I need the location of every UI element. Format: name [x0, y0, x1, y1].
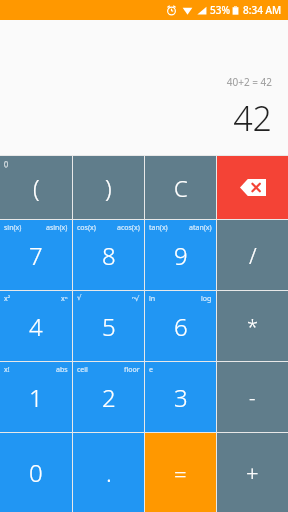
staticText: √	[77, 294, 82, 302]
staticText: x²	[4, 294, 11, 304]
button[interactable]: ln	[145, 291, 216, 361]
staticText: *	[247, 313, 259, 340]
staticText: xⁿ	[61, 294, 68, 304]
button[interactable]: *	[217, 291, 288, 361]
staticText: abs	[56, 365, 68, 375]
staticText: x!	[4, 365, 10, 375]
button[interactable]: -	[217, 362, 288, 432]
staticText: 6	[174, 310, 188, 343]
button[interactable]: )	[73, 156, 144, 219]
staticText: cos(x)	[77, 223, 96, 233]
button[interactable]: ceil	[73, 362, 144, 432]
staticText: 4	[29, 310, 43, 343]
staticText: atan(x)	[189, 223, 212, 233]
button[interactable]: √	[73, 291, 144, 361]
button[interactable]: +	[217, 433, 288, 512]
staticText: ()	[4, 159, 9, 169]
staticText: acos(x)	[117, 223, 140, 233]
staticText: /	[249, 240, 257, 270]
staticText: (	[33, 171, 40, 204]
staticText: e	[149, 365, 153, 375]
staticText: log	[201, 294, 212, 304]
button[interactable]: =	[145, 433, 216, 512]
staticText: 42	[233, 95, 272, 141]
staticText: 2	[102, 381, 116, 414]
staticText: ⁿ√	[132, 294, 140, 304]
staticText: .	[106, 456, 112, 489]
button[interactable]: .	[73, 433, 144, 512]
staticText: )	[105, 171, 112, 204]
staticText: 40+2 = 42	[226, 75, 272, 89]
button[interactable]: x²	[0, 291, 72, 361]
staticText: 8	[102, 239, 116, 272]
button[interactable]: x!	[0, 362, 72, 432]
staticText: tan(x)	[149, 223, 168, 233]
staticText: ln	[149, 294, 156, 304]
staticText: floor	[124, 365, 140, 375]
staticText: 7	[29, 239, 43, 272]
button[interactable]: ()	[0, 156, 72, 219]
staticText: -	[249, 384, 256, 411]
staticText: =	[174, 458, 187, 488]
staticText: sin(x)	[4, 223, 22, 233]
staticText: 9	[174, 239, 188, 272]
staticText: +	[246, 458, 259, 488]
staticText: asin(x)	[46, 223, 68, 233]
staticText: 3	[174, 381, 188, 414]
button[interactable]: cos(x)	[73, 220, 144, 290]
staticText: 5	[102, 310, 116, 343]
button[interactable]: sin(x)	[0, 220, 72, 290]
staticText: C	[174, 173, 188, 203]
staticText: 1	[29, 381, 43, 414]
staticText: ceil	[77, 365, 88, 375]
button[interactable]: e	[145, 362, 216, 432]
button[interactable]: tan(x)	[145, 220, 216, 290]
staticText: 0	[29, 456, 43, 489]
button[interactable]: Backspace	[217, 156, 288, 219]
button[interactable]: 0	[0, 433, 72, 512]
button[interactable]: C	[145, 156, 216, 219]
staticText: 8:34 AM	[243, 3, 282, 17]
staticText: 53%	[210, 3, 230, 17]
button[interactable]: /	[217, 220, 288, 290]
